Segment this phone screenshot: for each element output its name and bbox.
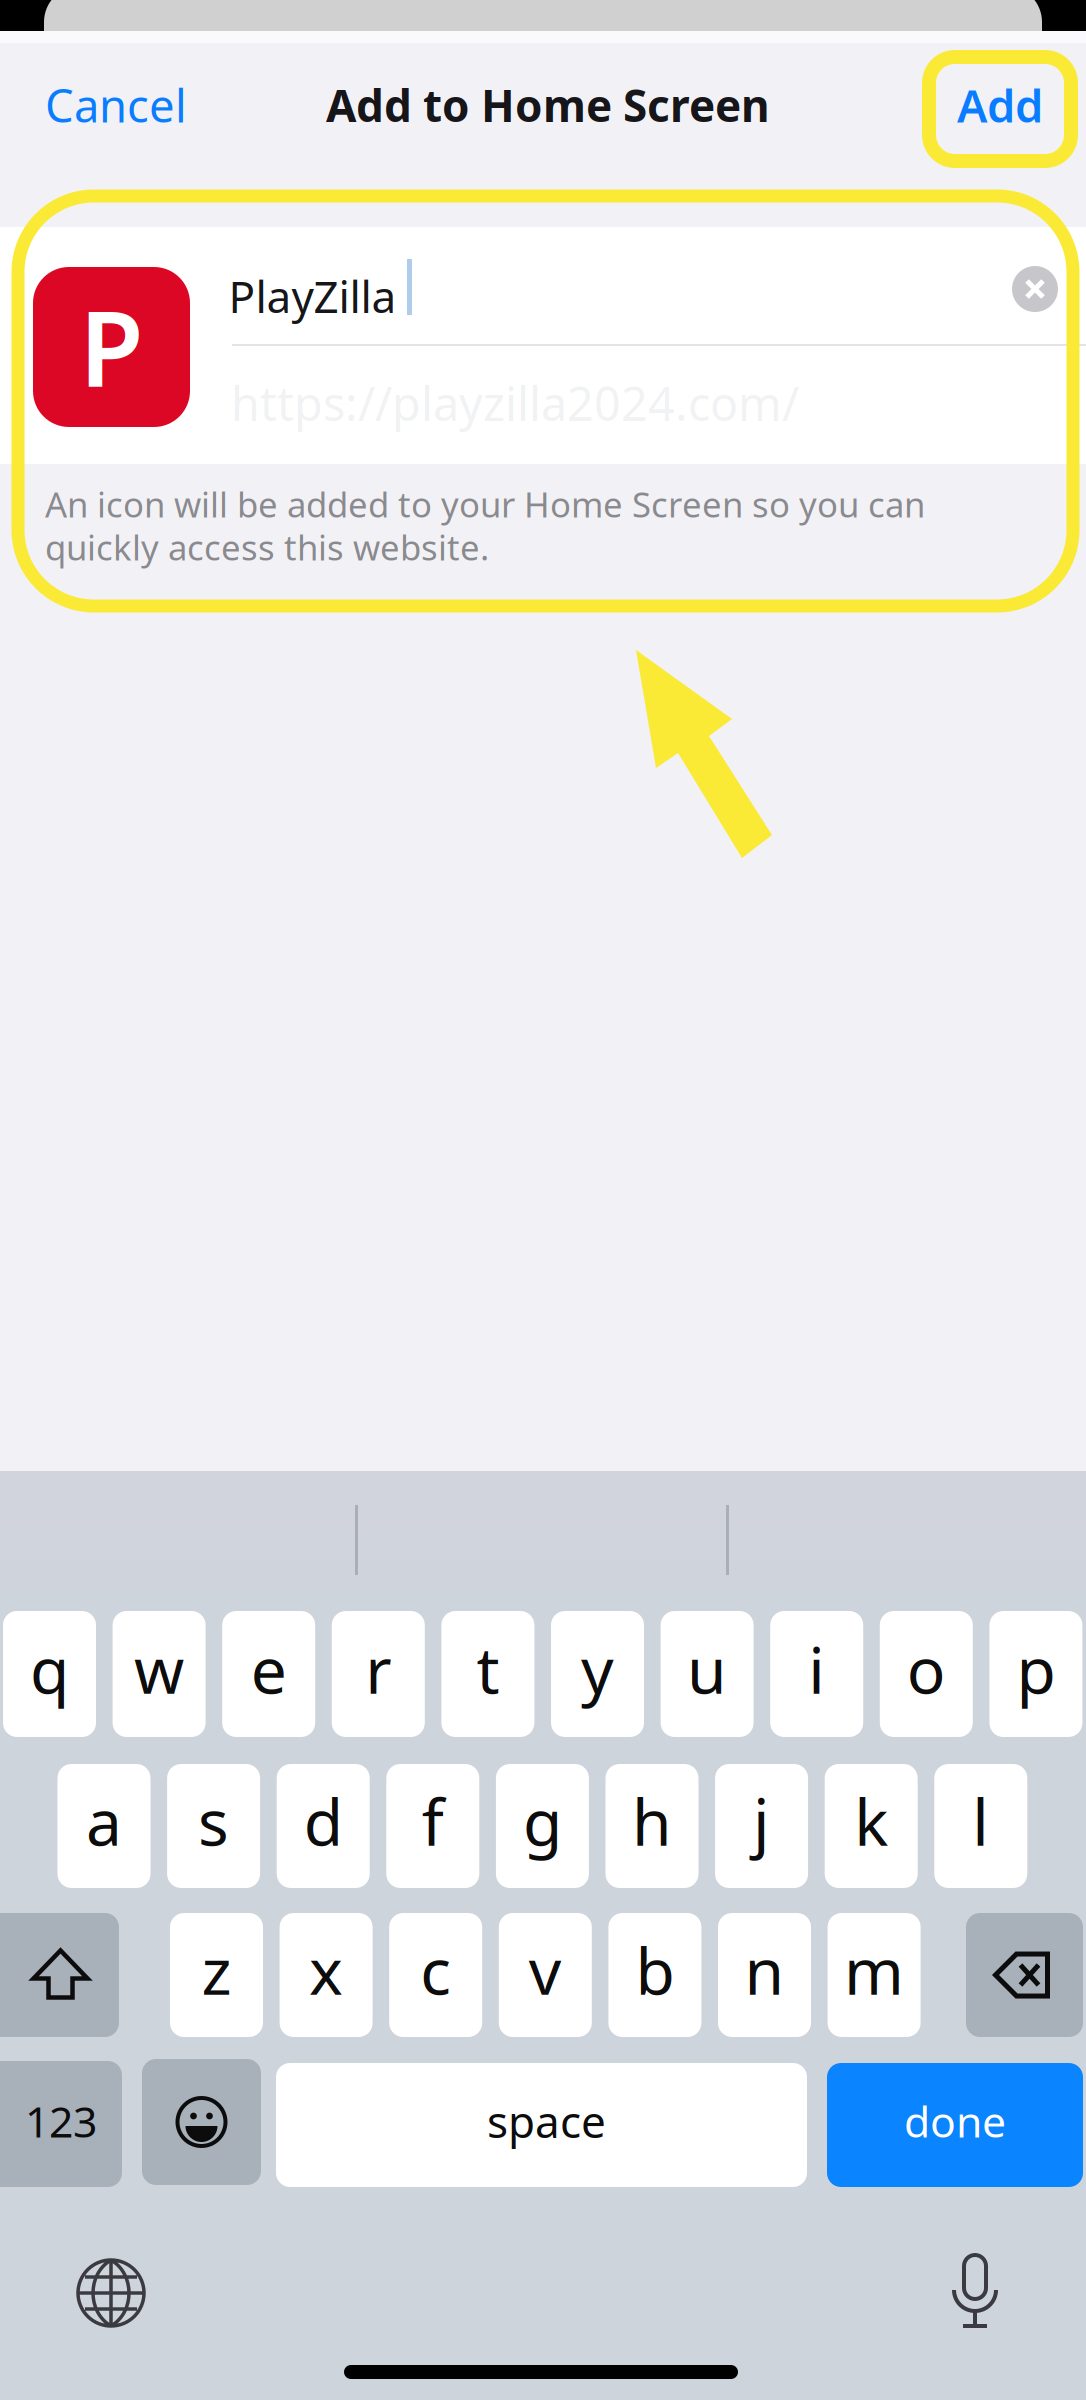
staticText: Cancel [45, 75, 187, 135]
staticText: h [632, 1778, 672, 1863]
staticText: done [904, 2093, 1006, 2149]
button[interactable]: j [715, 1764, 808, 1888]
button[interactable]: t [441, 1611, 534, 1737]
button[interactable]: Emoji [142, 2059, 261, 2185]
button[interactable]: m [828, 1913, 921, 2037]
staticText: v [529, 1927, 562, 2012]
staticText: n [744, 1927, 784, 2012]
staticText: y [581, 1626, 614, 1711]
staticText: t [476, 1626, 499, 1711]
staticText: i [808, 1626, 825, 1711]
button[interactable]: space [276, 2063, 807, 2187]
button[interactable]: f [386, 1764, 479, 1888]
staticText: Add to Home Screen [326, 76, 770, 134]
staticText: c [420, 1927, 451, 2012]
button[interactable]: z [170, 1913, 263, 2037]
staticText: z [201, 1927, 231, 2012]
staticText: k [854, 1778, 888, 1863]
button[interactable]: e [222, 1611, 315, 1737]
staticText: b [635, 1927, 674, 2012]
staticText: o [907, 1626, 946, 1711]
button[interactable]: i [770, 1611, 863, 1737]
button[interactable]: r [332, 1611, 425, 1737]
staticText: f [422, 1778, 444, 1863]
staticText: https://playzilla2024.com/ [231, 372, 799, 434]
staticText: x [309, 1927, 343, 2012]
staticText: quickly access this website. [45, 524, 489, 570]
button[interactable]: v [499, 1913, 592, 2037]
staticText: j [753, 1778, 770, 1863]
staticText: s [198, 1778, 229, 1863]
staticText: q [30, 1626, 69, 1711]
button[interactable]: Next keyboard [76, 2258, 146, 2328]
button[interactable]: d [277, 1764, 370, 1888]
staticText: l [972, 1778, 989, 1863]
staticText: u [687, 1626, 727, 1711]
button[interactable]: l [934, 1764, 1027, 1888]
staticText: m [844, 1927, 904, 2012]
button[interactable]: p [989, 1611, 1082, 1737]
button[interactable]: Add [900, 62, 1043, 148]
button[interactable]: q [3, 1611, 96, 1737]
staticText: An icon will be added to your Home Scree… [45, 481, 925, 527]
staticText: a [86, 1778, 122, 1863]
button[interactable]: s [167, 1764, 260, 1888]
button[interactable]: y [551, 1611, 644, 1737]
staticText: Add [957, 75, 1043, 135]
button[interactable]: Shift [0, 1913, 119, 2037]
button[interactable]: 123 [0, 2061, 122, 2187]
staticText: r [365, 1626, 391, 1711]
button[interactable]: c [389, 1913, 482, 2037]
staticText: PlayZilla [228, 267, 396, 325]
button[interactable]: Delete [966, 1913, 1083, 2037]
staticText: p [1016, 1626, 1055, 1711]
button[interactable]: Clear text [1012, 266, 1058, 312]
button[interactable]: k [825, 1764, 918, 1888]
button[interactable]: o [880, 1611, 973, 1737]
button[interactable]: u [661, 1611, 754, 1737]
staticText: space [487, 2092, 606, 2150]
button[interactable]: x [280, 1913, 373, 2037]
button[interactable]: Cancel [45, 62, 345, 148]
button[interactable]: b [608, 1913, 701, 2037]
button[interactable]: Dictate [940, 2250, 1010, 2334]
button[interactable]: done [827, 2063, 1083, 2187]
staticText: g [523, 1778, 562, 1863]
button[interactable]: w [113, 1611, 206, 1737]
button[interactable]: a [57, 1764, 150, 1888]
button[interactable]: h [605, 1764, 698, 1888]
staticText: w [134, 1626, 184, 1711]
staticText: d [304, 1778, 343, 1863]
button[interactable]: g [496, 1764, 589, 1888]
button[interactable]: n [718, 1913, 811, 2037]
staticText: 123 [25, 2093, 97, 2149]
staticText: P [79, 278, 143, 416]
staticText: e [251, 1626, 287, 1711]
